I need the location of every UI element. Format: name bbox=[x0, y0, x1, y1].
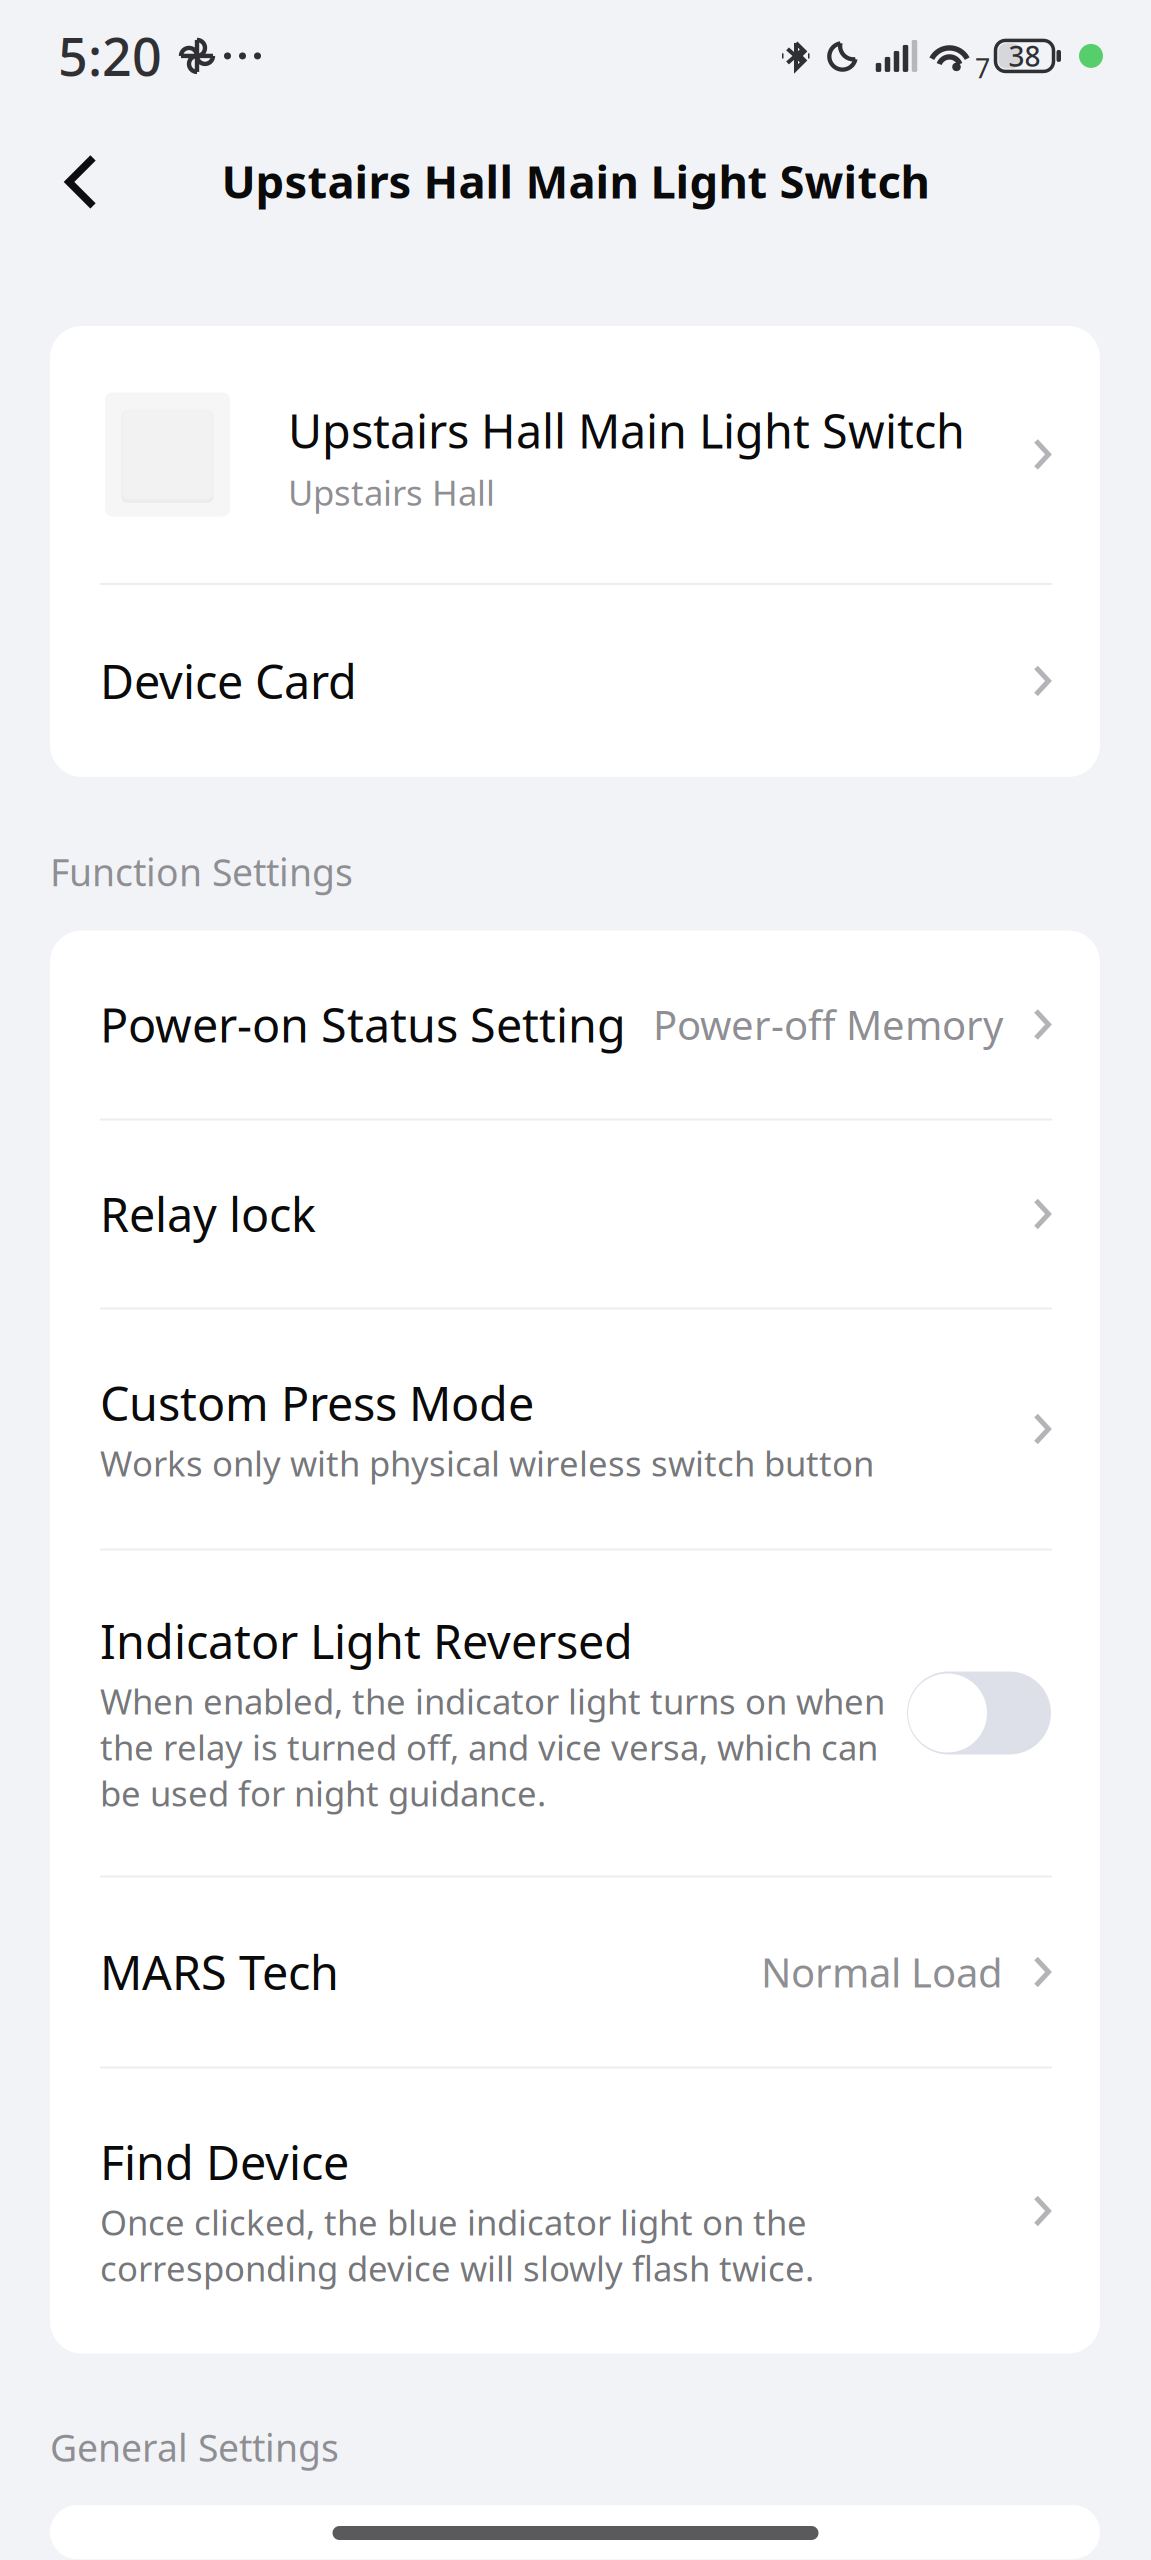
staticText: Upstairs Hall Main Light Switch bbox=[221, 151, 929, 211]
button[interactable]: MARS Tech bbox=[50, 1877, 1100, 2066]
staticText: Power-off Memory bbox=[653, 998, 1003, 1051]
button[interactable]: Indicator Light Reversed bbox=[907, 1671, 1051, 1754]
staticText: Upstairs Hall Main Light Switch bbox=[288, 399, 965, 461]
button[interactable]: Relay lock bbox=[50, 1120, 1100, 1307]
staticText: When enabled, the indicator light turns … bbox=[100, 1678, 885, 1816]
staticText: Device Card bbox=[100, 650, 357, 712]
staticText: Function Settings bbox=[50, 847, 353, 896]
staticText: Normal Load bbox=[761, 1945, 1003, 1998]
staticText: Custom Press Mode bbox=[100, 1372, 534, 1434]
staticText: Relay lock bbox=[100, 1183, 316, 1245]
staticText: General Settings bbox=[50, 2422, 339, 2472]
button[interactable]: Power-on Status Setting bbox=[50, 930, 1100, 1118]
button[interactable]: Device Card bbox=[50, 585, 1100, 777]
button[interactable]: Back bbox=[42, 133, 118, 229]
staticText: 7 bbox=[975, 50, 990, 86]
staticText: 38 bbox=[1008, 37, 1040, 74]
staticText: Upstairs Hall bbox=[288, 469, 495, 515]
button[interactable]: Custom Press Mode bbox=[50, 1309, 1100, 1548]
staticText: Power-on Status Setting bbox=[100, 993, 626, 1055]
staticText: Once clicked, the blue indicator light o… bbox=[100, 2199, 814, 2291]
staticText: Find Device bbox=[100, 2131, 349, 2193]
button[interactable]: Upstairs Hall Main Light Switch bbox=[50, 326, 1100, 583]
staticText: Works only with physical wireless switch… bbox=[100, 1440, 874, 1486]
button[interactable]: Find Device bbox=[50, 2068, 1100, 2353]
staticText: 5:20 bbox=[58, 21, 162, 90]
staticText: MARS Tech bbox=[100, 1941, 339, 2003]
staticText: Indicator Light Reversed bbox=[100, 1610, 633, 1672]
